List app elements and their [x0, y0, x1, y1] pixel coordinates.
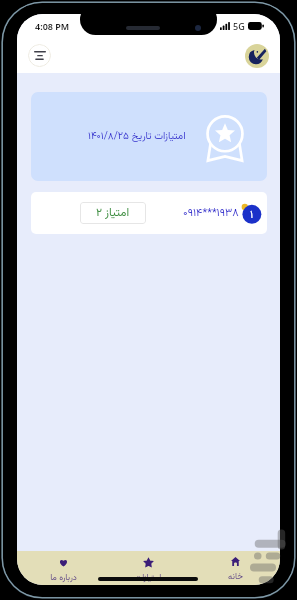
button[interactable]: خانه	[215, 557, 255, 583]
staticText: ۰۹۱۴***۱۹۳۸	[183, 205, 239, 222]
button[interactable]: امتیازات تاریخ ۱۴۰۱/۸/۲۵	[31, 92, 267, 181]
staticText: 5G	[233, 20, 245, 32]
button[interactable]: ۰۹۱۴***۱۹۳۸	[31, 192, 267, 234]
button[interactable]: درباره ما	[43, 558, 83, 584]
staticText: امتیاز ۲	[96, 204, 130, 222]
staticText: 4:08 PM	[35, 20, 70, 32]
button[interactable]: App logo	[245, 44, 269, 68]
staticText: امتیازات شما	[128, 571, 168, 585]
button[interactable]: Menu	[28, 44, 51, 67]
staticText: درباره ما	[50, 571, 77, 584]
staticText: امتیازات تاریخ ۱۴۰۱/۸/۲۵	[88, 129, 186, 145]
button[interactable]: امتیاز ۲	[80, 202, 146, 224]
button[interactable]: امتیازات شما	[128, 558, 168, 585]
staticText: خانه	[228, 570, 243, 583]
staticText: ۱	[250, 207, 254, 224]
